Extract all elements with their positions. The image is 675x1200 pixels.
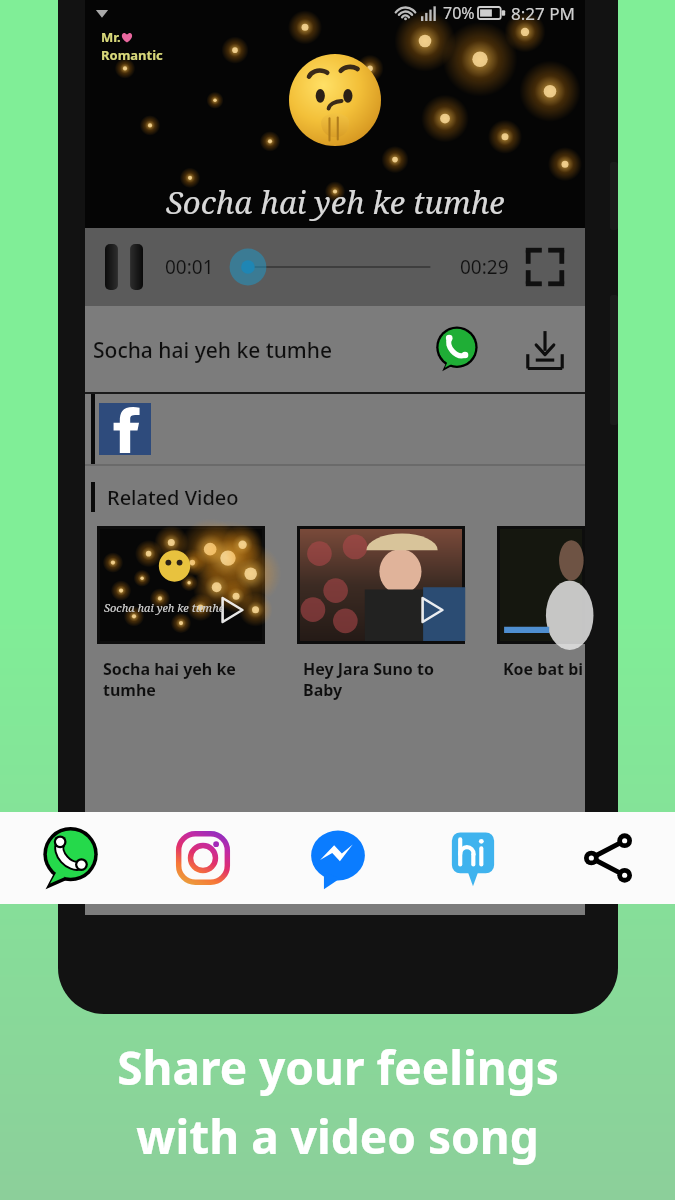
staticText: 8:27 PM <box>511 2 575 25</box>
staticText: Related Video <box>107 484 239 511</box>
staticText: 70% <box>443 2 475 24</box>
staticText: Hey Jara Suno to Baby <box>303 658 434 701</box>
staticText: 00:29 <box>460 254 509 280</box>
staticText: Socha hai yeh ke tumhe <box>104 600 225 615</box>
button[interactable]: Socha hai yeh ke tumhe <box>97 526 265 701</box>
button[interactable]: Download <box>519 324 571 376</box>
staticText: Romantic <box>101 46 163 64</box>
staticText: Socha hai yeh ke tumhe <box>103 658 236 701</box>
button[interactable]: Share on WhatsApp <box>429 323 483 377</box>
staticText: Mr. <box>101 28 121 46</box>
button[interactable]: Share on Messenger <box>270 812 405 904</box>
button[interactable]: Pause <box>105 244 143 290</box>
button[interactable]: Share on WhatsApp <box>0 812 135 904</box>
button[interactable]: Share <box>540 812 675 904</box>
staticText: Socha hai yeh ke tumhe <box>166 181 505 223</box>
staticText: with a video song <box>136 1105 539 1168</box>
button[interactable]: Koe bat bi <box>497 526 585 680</box>
button[interactable]: Fullscreen <box>525 247 565 287</box>
button[interactable]: Hey Jara Suno to Baby <box>297 526 465 701</box>
staticText: Share your feelings <box>117 1036 559 1099</box>
button[interactable]: Facebook <box>99 403 151 455</box>
staticText: 00:01 <box>165 254 214 280</box>
button[interactable]: Share on Hike <box>405 812 540 904</box>
button[interactable]: Share on Instagram <box>135 812 270 904</box>
staticText: Socha hai yeh ke tumhe <box>93 336 429 365</box>
staticText: Koe bat bi <box>503 658 584 680</box>
